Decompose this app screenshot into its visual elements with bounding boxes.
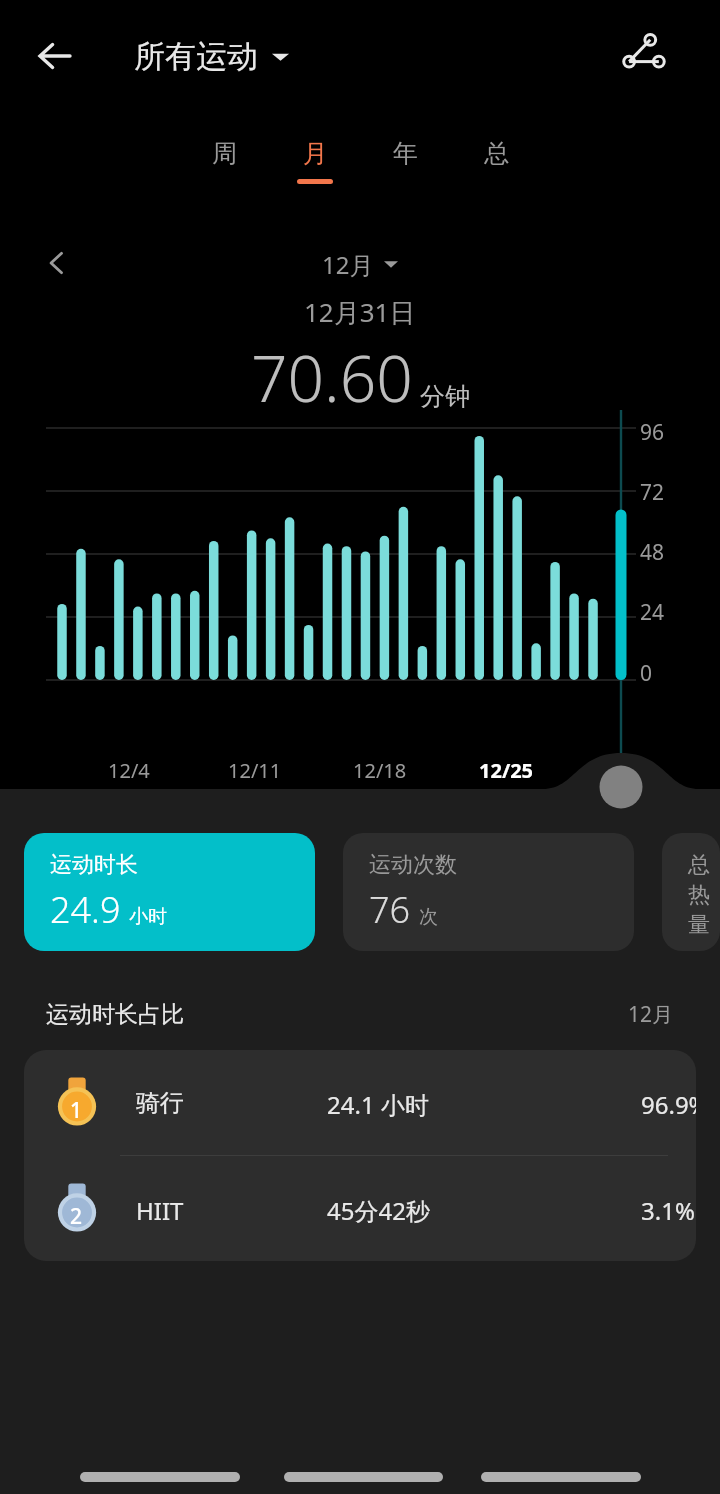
button[interactable]: 2 bbox=[24, 1156, 696, 1261]
staticText: 月 bbox=[303, 138, 328, 169]
staticText: 12月 bbox=[628, 1000, 674, 1029]
staticText: 次 bbox=[419, 905, 438, 929]
button[interactable]: 1 bbox=[24, 1050, 696, 1155]
staticText: 72 bbox=[640, 478, 665, 507]
staticText: HIIT bbox=[136, 1194, 184, 1227]
button[interactable]: Back bbox=[28, 26, 88, 86]
staticText: 12月 bbox=[322, 248, 374, 280]
button[interactable]: 运动次数 bbox=[343, 833, 634, 951]
staticText: 24.9 bbox=[50, 885, 121, 934]
staticText: 运动时长占比 bbox=[46, 1000, 184, 1029]
staticText: 分钟 bbox=[420, 381, 470, 412]
staticText: 12/25 bbox=[479, 757, 534, 784]
button[interactable]: 月 bbox=[279, 138, 351, 184]
staticText: 70.60 bbox=[251, 334, 413, 421]
button[interactable]: 运动时长 bbox=[24, 833, 315, 951]
staticText: 总热量 bbox=[688, 851, 720, 939]
staticText: 45分42秒 bbox=[327, 1194, 430, 1227]
staticText: 12月31日 bbox=[304, 294, 416, 330]
staticText: 12/11 bbox=[228, 757, 282, 784]
staticText: 小时 bbox=[129, 905, 167, 929]
button[interactable]: 周 bbox=[188, 138, 260, 169]
staticText: 12/18 bbox=[353, 757, 407, 784]
staticText: 8,2 bbox=[688, 945, 720, 951]
button[interactable]: 所有运动 bbox=[134, 30, 290, 82]
staticText: 24 bbox=[640, 598, 665, 627]
staticText: 24.1 小时 bbox=[327, 1088, 429, 1121]
staticText: 96.9% bbox=[641, 1088, 696, 1121]
staticText: 总 bbox=[484, 138, 509, 169]
staticText: 1 bbox=[70, 1096, 83, 1125]
button[interactable]: 总热量 bbox=[662, 833, 720, 951]
button[interactable]: 总 bbox=[460, 138, 532, 169]
button[interactable]: Previous month bbox=[34, 240, 80, 286]
staticText: 年 bbox=[393, 138, 418, 169]
staticText: 48 bbox=[640, 538, 665, 567]
button[interactable]: 12月 bbox=[322, 248, 398, 280]
staticText: 12/4 bbox=[108, 757, 150, 784]
staticText: 运动时长 bbox=[50, 851, 138, 879]
staticText: 76 bbox=[369, 885, 411, 934]
staticText: 运动次数 bbox=[369, 851, 457, 879]
staticText: 3.1% bbox=[641, 1194, 695, 1227]
staticText: 96 bbox=[640, 418, 665, 447]
staticText: 所有运动 bbox=[134, 37, 258, 76]
staticText: 0 bbox=[640, 659, 653, 688]
button[interactable]: 年 bbox=[369, 138, 441, 169]
staticText: 2 bbox=[70, 1202, 83, 1231]
staticText: 骑行 bbox=[136, 1088, 184, 1118]
staticText: 周 bbox=[212, 138, 237, 169]
button[interactable]: Share bbox=[610, 22, 676, 88]
